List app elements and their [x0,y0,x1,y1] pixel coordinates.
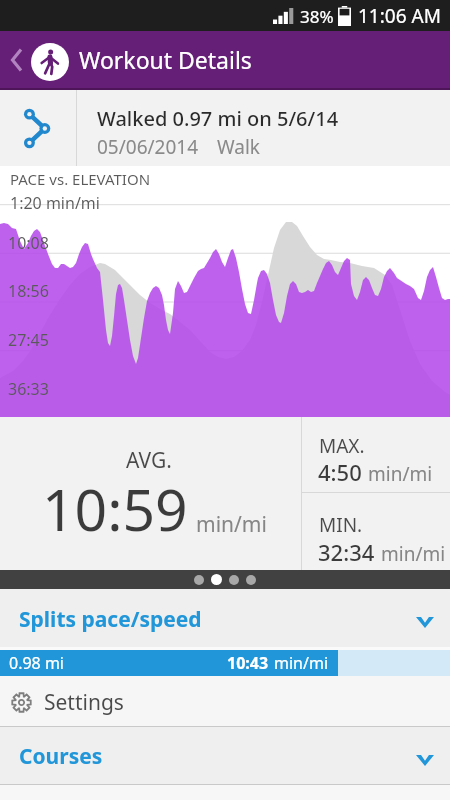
other: Expand Courses [410,745,440,775]
staticText: min/mi [381,541,446,567]
staticText: 4:50 [318,457,362,487]
staticText: 18:56 [8,280,49,302]
staticText: 27:45 [8,329,49,351]
staticText: 10:43 [227,652,269,674]
staticText: Settings [44,688,124,717]
staticText: AVG. [126,446,172,475]
staticText: 10:08 [8,232,49,254]
staticText: MIN. [319,512,363,538]
staticText: min/mi [274,652,329,674]
staticText: Courses [19,742,103,771]
staticText: Splits pace/speed [19,605,202,634]
staticText: min/mi [196,510,267,539]
button[interactable]: Courses [0,727,450,784]
staticText: Walk [217,134,260,160]
button[interactable]: Back [0,31,450,88]
button[interactable]: Back [1,45,31,75]
button[interactable]: Settings [0,676,450,727]
staticText: 11:06 AM [358,3,441,29]
staticText: 05/06/2014 [97,134,199,160]
staticText: 36:33 [8,378,49,400]
button[interactable]: 0.98 mi [0,650,450,676]
staticText: 0.98 mi [9,652,64,674]
staticText: Workout Details [79,44,252,75]
other: Expand Splits pace/speed [410,607,440,637]
button[interactable]: Splits pace/speed [0,589,450,647]
staticText: MAX. [319,433,365,459]
staticText: min/mi [368,461,433,487]
button[interactable]: Walked 0.97 mi on 5/6/14 [0,90,450,166]
staticText: PACE vs. ELEVATION [10,169,151,189]
staticText: Walked 0.97 mi on 5/6/14 [97,105,339,132]
staticText: 32:34 [318,537,375,567]
staticText: 10:59 [42,470,188,548]
staticText: 1:20 min/mi [10,192,100,214]
staticText: 38% [300,5,334,28]
